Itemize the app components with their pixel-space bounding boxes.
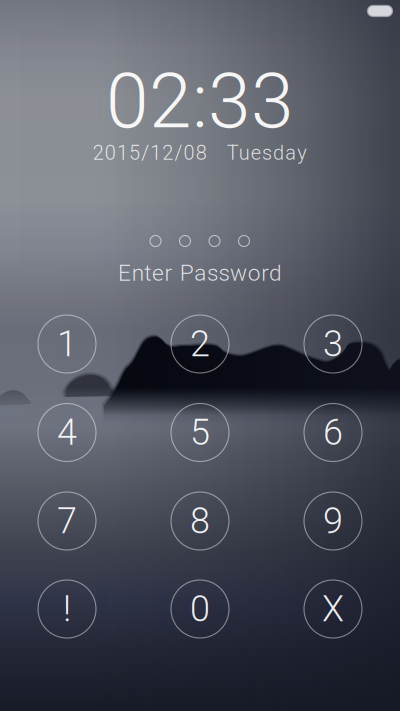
staticText: 7 [57,500,77,542]
button[interactable]: ! [38,580,96,638]
staticText: 2 [190,323,210,365]
staticText: Tuesday [227,141,307,165]
staticText: 02:33 [106,56,294,146]
button[interactable]: 7 [38,492,96,550]
staticText: 9 [323,500,343,542]
staticText: 3 [323,323,343,365]
button[interactable]: 9 [304,492,362,550]
staticText: 6 [323,411,343,454]
button[interactable]: 3 [304,315,362,373]
staticText: ! [63,588,71,630]
staticText: 5 [190,411,210,454]
button[interactable]: Delete [304,580,362,638]
button[interactable]: 5 [171,403,229,461]
staticText: 4 [57,411,77,454]
button[interactable]: 2 [171,315,229,373]
staticText: Enter Password [118,260,282,286]
staticText: 2015/12/08 [93,141,207,165]
staticText: 1 [57,323,77,365]
staticText: X [322,588,344,630]
button[interactable]: 6 [304,403,362,461]
button[interactable]: 4 [38,403,96,461]
staticText: 8 [190,500,210,542]
button[interactable]: 8 [171,492,229,550]
button[interactable]: 1 [38,315,96,373]
button[interactable]: 0 [171,580,229,638]
staticText: 0 [190,588,210,630]
